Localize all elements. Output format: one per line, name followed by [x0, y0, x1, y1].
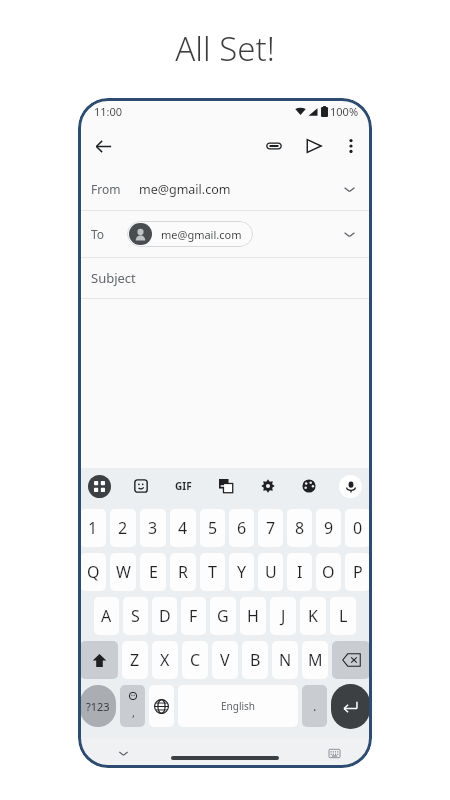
- button[interactable]: G: [210, 597, 236, 635]
- button[interactable]: O: [316, 553, 341, 591]
- staticText: 8: [295, 517, 305, 539]
- staticText: W: [116, 561, 131, 583]
- staticText: .: [313, 697, 317, 715]
- button[interactable]: S: [123, 597, 148, 635]
- staticText: U: [265, 561, 277, 583]
- button[interactable]: Y: [229, 553, 254, 591]
- staticText: H: [247, 605, 259, 627]
- button[interactable]: Themes: [297, 474, 321, 498]
- staticText: 4: [178, 517, 188, 539]
- button[interactable]: I: [287, 553, 312, 591]
- staticText: Q: [87, 561, 100, 583]
- button[interactable]: 7: [258, 509, 283, 547]
- staticText: 3: [148, 517, 158, 539]
- button[interactable]: Toolbar menu: [88, 475, 111, 498]
- button[interactable]: Stickers: [129, 474, 153, 498]
- staticText: me@gmail.com: [139, 181, 231, 198]
- button[interactable]: Emoji and comma: [120, 685, 145, 727]
- button[interactable]: N: [272, 641, 298, 679]
- button[interactable]: Z: [122, 641, 148, 679]
- button[interactable]: 9: [316, 509, 341, 547]
- button[interactable]: Q: [80, 553, 106, 591]
- button[interactable]: 5: [200, 509, 225, 547]
- button[interactable]: D: [152, 597, 177, 635]
- button[interactable]: Backspace: [332, 641, 370, 679]
- button[interactable]: 8: [287, 509, 312, 547]
- staticText: 2: [118, 517, 128, 539]
- staticText: D: [159, 605, 171, 627]
- button[interactable]: Attach file: [258, 130, 290, 162]
- button[interactable]: Shift: [80, 641, 118, 679]
- button[interactable]: Change keyboard: [324, 743, 344, 763]
- button[interactable]: 6: [229, 509, 254, 547]
- staticText: 6: [237, 517, 247, 539]
- button[interactable]: More options: [336, 131, 366, 161]
- staticText: GIF: [175, 479, 192, 493]
- staticText: 5: [208, 517, 218, 539]
- button[interactable]: A: [94, 597, 119, 635]
- staticText: ?123: [86, 699, 110, 714]
- button[interactable]: M: [302, 641, 328, 679]
- button[interactable]: V: [212, 641, 238, 679]
- staticText: English: [221, 699, 256, 713]
- button[interactable]: 3: [140, 509, 166, 547]
- button[interactable]: P: [345, 553, 370, 591]
- button[interactable]: Voice input: [339, 475, 362, 498]
- button[interactable]: me@gmail.com: [127, 221, 253, 247]
- staticText: me@gmail.com: [161, 227, 242, 242]
- staticText: P: [353, 561, 363, 583]
- button[interactable]: H: [240, 597, 266, 635]
- staticText: C: [190, 649, 201, 671]
- staticText: L: [339, 605, 348, 627]
- button[interactable]: 1: [80, 509, 106, 547]
- button[interactable]: W: [110, 553, 136, 591]
- button[interactable]: .: [302, 685, 327, 727]
- button[interactable]: Hide keyboard: [112, 742, 134, 764]
- button[interactable]: To: [78, 211, 372, 257]
- staticText: G: [217, 605, 229, 627]
- staticText: X: [160, 649, 170, 671]
- staticText: 1: [88, 517, 98, 539]
- staticText: F: [189, 605, 198, 627]
- button[interactable]: 0: [345, 509, 370, 547]
- staticText: R: [178, 561, 188, 583]
- button[interactable]: E: [140, 553, 166, 591]
- button[interactable]: X: [152, 641, 178, 679]
- button[interactable]: L: [330, 597, 356, 635]
- button[interactable]: From: [78, 168, 372, 210]
- staticText: N: [279, 649, 292, 671]
- button[interactable]: 4: [170, 509, 196, 547]
- button[interactable]: C: [182, 641, 208, 679]
- button[interactable]: Switch language: [149, 685, 174, 727]
- button[interactable]: ?123: [80, 685, 116, 727]
- button[interactable]: English: [178, 685, 298, 727]
- button[interactable]: Translate: [214, 474, 238, 498]
- staticText: Z: [130, 649, 140, 671]
- button[interactable]: Settings: [256, 474, 280, 498]
- button[interactable]: Subject: [78, 258, 372, 298]
- button[interactable]: J: [270, 597, 296, 635]
- button[interactable]: 2: [110, 509, 136, 547]
- button[interactable]: GIF: [170, 473, 196, 499]
- button[interactable]: B: [242, 641, 268, 679]
- staticText: 9: [324, 517, 334, 539]
- staticText: T: [208, 561, 217, 583]
- staticText: M: [308, 649, 323, 671]
- staticText: All Set!: [175, 26, 275, 71]
- staticText: I: [297, 561, 303, 583]
- staticText: A: [101, 605, 112, 627]
- button[interactable]: T: [200, 553, 225, 591]
- staticText: J: [281, 605, 286, 627]
- button[interactable]: K: [300, 597, 326, 635]
- staticText: 7: [266, 517, 276, 539]
- staticText: 100%: [330, 104, 359, 119]
- staticText: 0: [353, 517, 363, 539]
- button[interactable]: R: [170, 553, 196, 591]
- button[interactable]: Back: [86, 129, 120, 163]
- button[interactable]: U: [258, 553, 283, 591]
- staticText: Y: [237, 561, 247, 583]
- staticText: O: [322, 561, 335, 583]
- button[interactable]: Send: [298, 130, 330, 162]
- button[interactable]: Enter: [331, 684, 370, 729]
- button[interactable]: F: [181, 597, 206, 635]
